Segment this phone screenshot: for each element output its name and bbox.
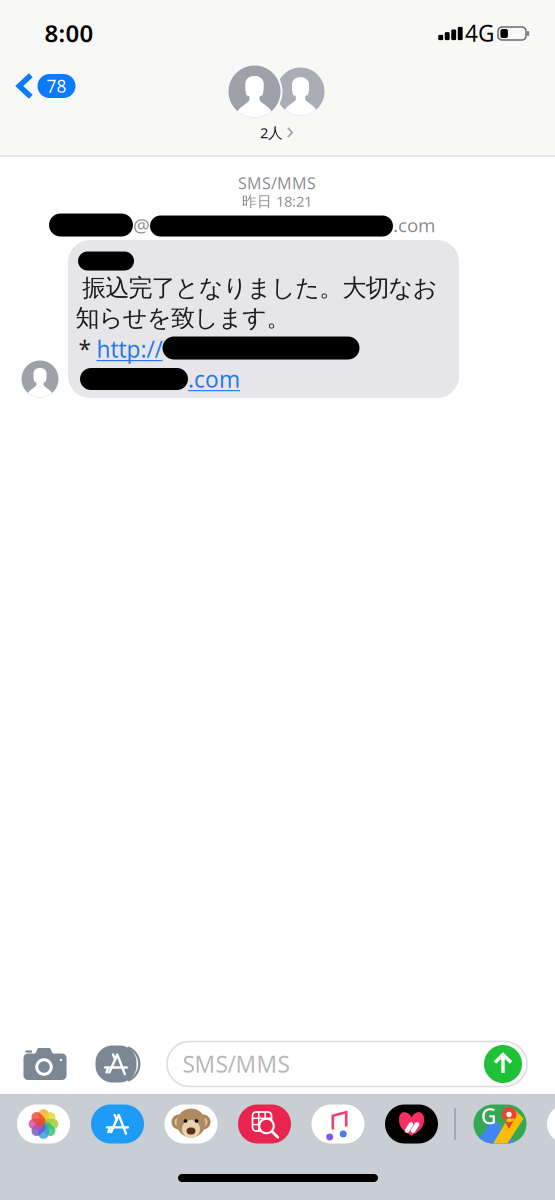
button[interactable]: Send: [484, 1045, 522, 1083]
staticText: 振込完了となりました。大切なお: [82, 273, 438, 303]
staticText: 2人: [260, 123, 283, 142]
staticText: SMS/MMS: [238, 172, 316, 194]
button[interactable]: Camera: [17, 1040, 73, 1088]
staticText: 昨日 18:21: [242, 191, 312, 211]
staticText: http://: [96, 334, 162, 364]
staticText: .com: [393, 213, 435, 237]
button[interactable]: Back, 78 unread: [6, 61, 85, 110]
button[interactable]: App Store: [91, 1104, 144, 1143]
button[interactable]: 2 people: [214, 62, 338, 145]
staticText: G: [481, 1102, 497, 1130]
button[interactable]: Maps: [473, 1104, 526, 1143]
button[interactable]: Photos: [17, 1104, 70, 1143]
button[interactable]: App drawer: [90, 1040, 142, 1088]
button[interactable]: Images: [238, 1104, 291, 1143]
button[interactable]: More apps: [547, 1104, 555, 1143]
button[interactable]: Apple Pay: [385, 1104, 438, 1143]
staticText: .com: [188, 364, 240, 394]
staticText: *: [78, 334, 96, 364]
staticText: @: [133, 213, 150, 237]
staticText: 8:00: [44, 17, 93, 49]
staticText: SMS/MMS: [182, 1049, 289, 1079]
staticText: 知らせを致します。: [76, 303, 290, 333]
staticText: 78: [46, 74, 66, 97]
button[interactable]: Music: [311, 1104, 364, 1143]
staticText: 4G: [465, 18, 495, 48]
button[interactable]: Memoji: [164, 1104, 217, 1143]
